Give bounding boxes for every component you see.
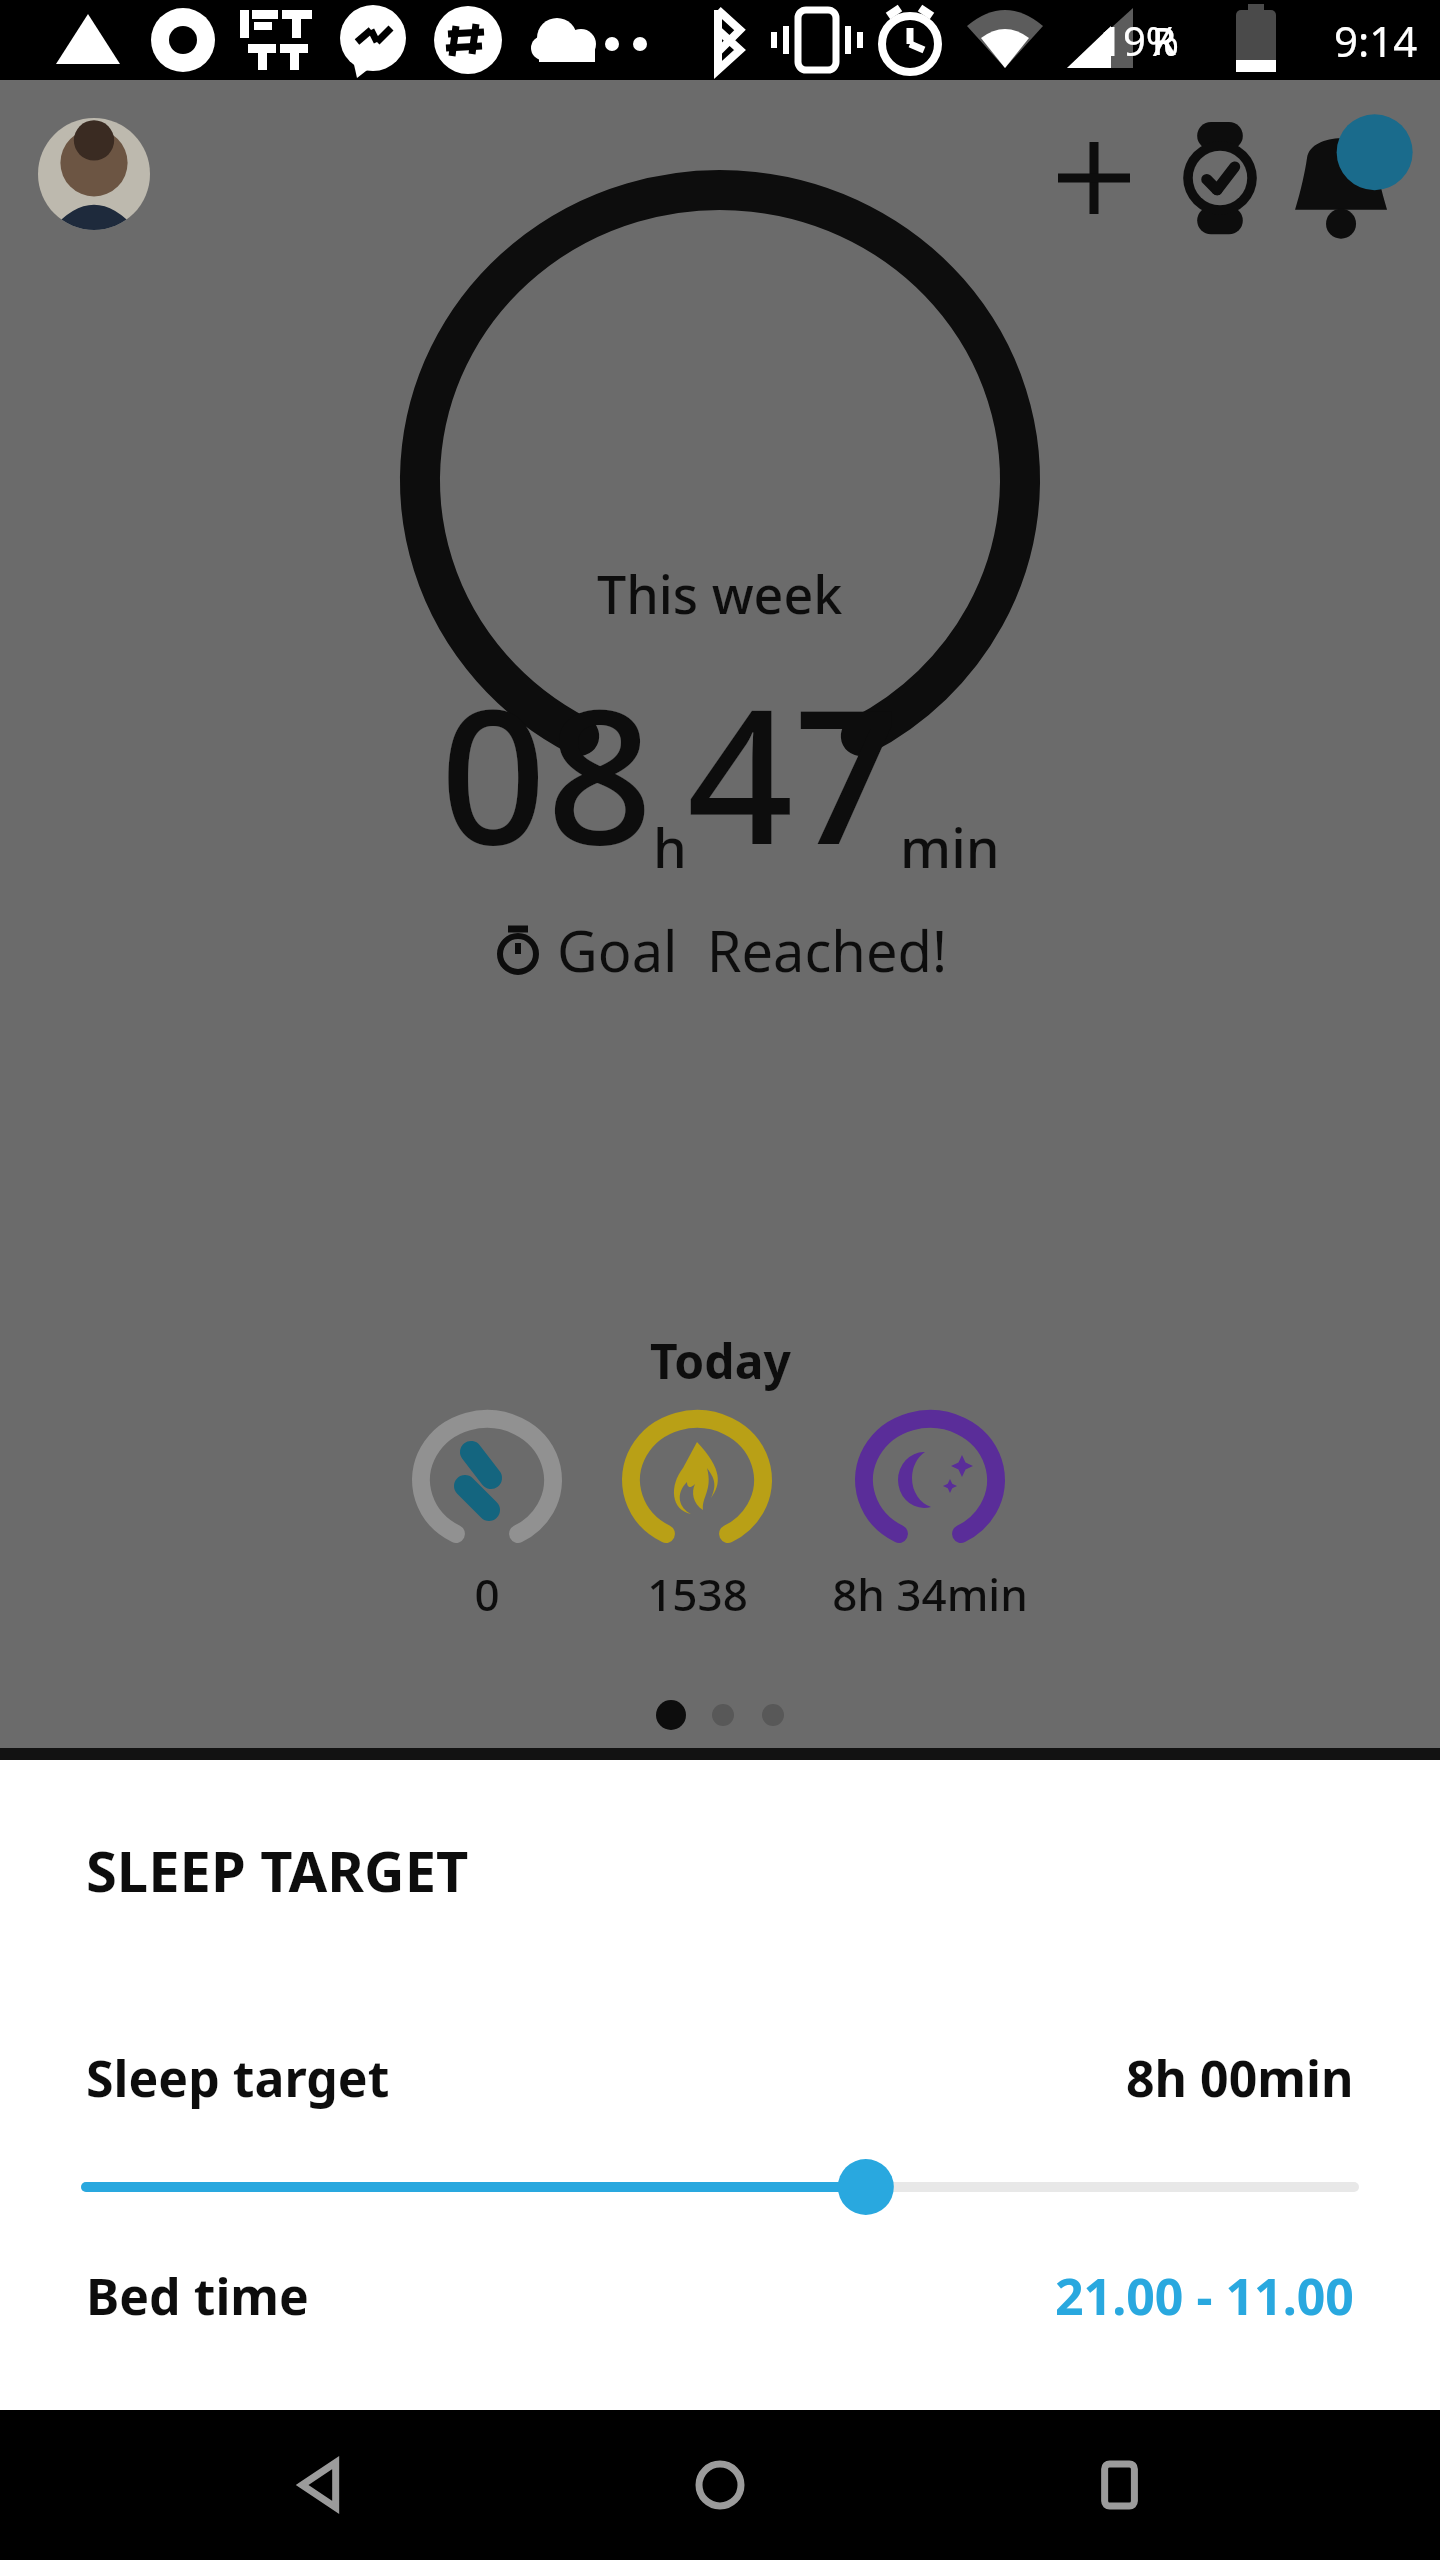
staticText: 9:14	[1334, 12, 1418, 69]
button[interactable]: Notifications, 6 new	[1294, 122, 1406, 234]
staticText: h	[653, 810, 687, 884]
button[interactable]: Home	[640, 2410, 800, 2560]
staticText: 19%	[1100, 13, 1179, 67]
button[interactable]: Page 1	[656, 1700, 686, 1730]
button[interactable]: 8h 34min	[832, 1410, 1028, 1624]
staticText: 0	[474, 1564, 500, 1624]
staticText: Bed time	[86, 2262, 309, 2330]
staticText: Sleep target	[86, 2044, 390, 2112]
staticText: min	[900, 810, 1000, 884]
button[interactable]: Back	[240, 2410, 400, 2560]
button[interactable]: Sleep target slider	[86, 2152, 1354, 2222]
staticText: R	[1152, 14, 1177, 66]
staticText: Today	[650, 1328, 791, 1393]
button[interactable]: Add	[1042, 126, 1146, 230]
button[interactable]: Recent apps	[1040, 2410, 1200, 2560]
staticText: 08	[440, 645, 653, 898]
button[interactable]: Sleep target	[86, 2044, 1354, 2112]
staticText: 1538	[647, 1564, 748, 1624]
staticText: 8h 00min	[1126, 2044, 1354, 2112]
button[interactable]: Page 2	[712, 1704, 734, 1726]
staticText: This week	[597, 558, 843, 629]
button[interactable]: Watch connected	[1168, 126, 1272, 230]
staticText: 21.00 - 11.00	[1055, 2262, 1354, 2330]
staticText: Goal Reached!	[557, 912, 948, 988]
staticText: SLEEP TARGET	[86, 1832, 469, 1908]
staticText: 47	[687, 645, 900, 898]
button[interactable]: Page 3	[762, 1704, 784, 1726]
staticText: 8h 34min	[832, 1564, 1028, 1624]
button[interactable]: 1538	[622, 1410, 772, 1624]
button[interactable]: Profile	[38, 118, 150, 230]
button[interactable]: Bed time	[86, 2262, 1354, 2330]
button[interactable]: 0	[412, 1410, 562, 1624]
